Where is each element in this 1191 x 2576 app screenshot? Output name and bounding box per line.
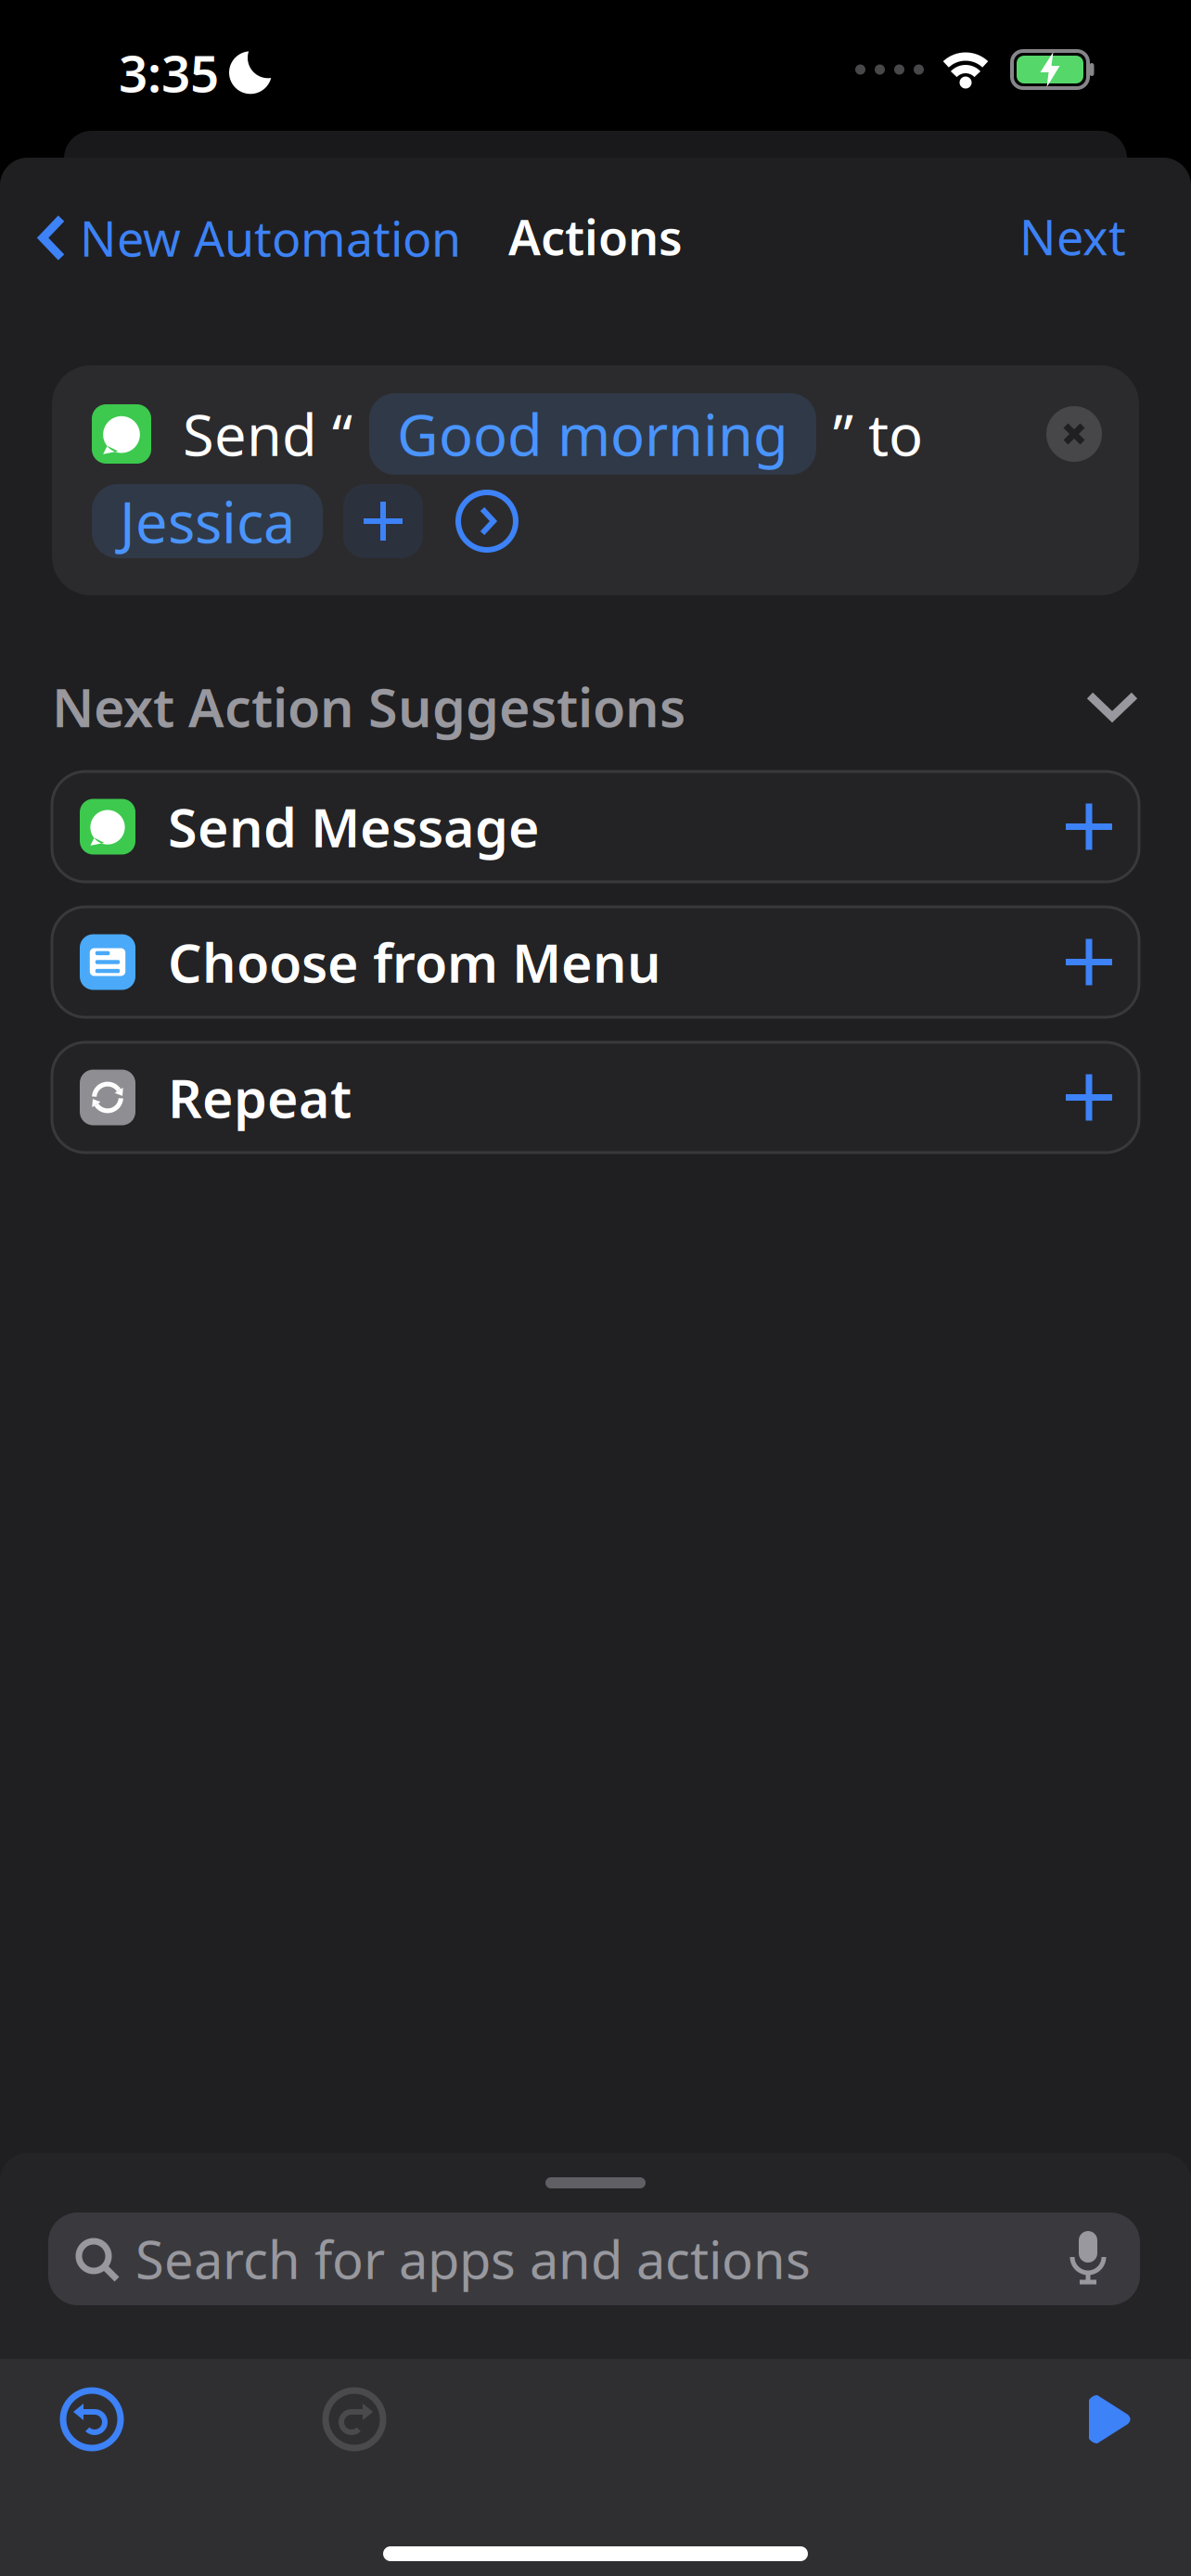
button[interactable] (326, 2391, 383, 2448)
staticText: Send Message (168, 791, 540, 862)
button[interactable] (343, 484, 423, 558)
button[interactable]: New Automation (37, 206, 461, 270)
staticText: Search for apps and actions (135, 2224, 811, 2293)
button[interactable] (63, 2391, 121, 2448)
staticText: Next (1019, 204, 1126, 269)
button[interactable] (1086, 2394, 1133, 2444)
staticText: Repeat (168, 1062, 352, 1133)
button[interactable]: Good morning (369, 393, 816, 475)
staticText: ” to (833, 396, 923, 472)
button[interactable]: Next (1019, 204, 1126, 269)
staticText: New Automation (80, 206, 461, 270)
staticText: 3:35 (119, 39, 219, 106)
button[interactable]: Search for apps and actions (48, 2213, 1140, 2305)
staticText: Choose from Menu (168, 927, 661, 997)
button[interactable]: Send Message (52, 772, 1139, 882)
staticText: Send “ (183, 396, 352, 472)
button[interactable] (1085, 691, 1139, 722)
staticText: Actions (508, 204, 683, 269)
button[interactable]: Choose from Menu (52, 907, 1139, 1017)
button[interactable] (1046, 406, 1102, 462)
button[interactable]: Jessica (92, 484, 323, 558)
button[interactable]: Repeat (52, 1042, 1139, 1153)
staticText: Next Action Suggestions (52, 671, 685, 742)
button[interactable] (458, 492, 516, 550)
staticText: Good morning (397, 396, 788, 472)
staticText: Jessica (120, 483, 295, 559)
